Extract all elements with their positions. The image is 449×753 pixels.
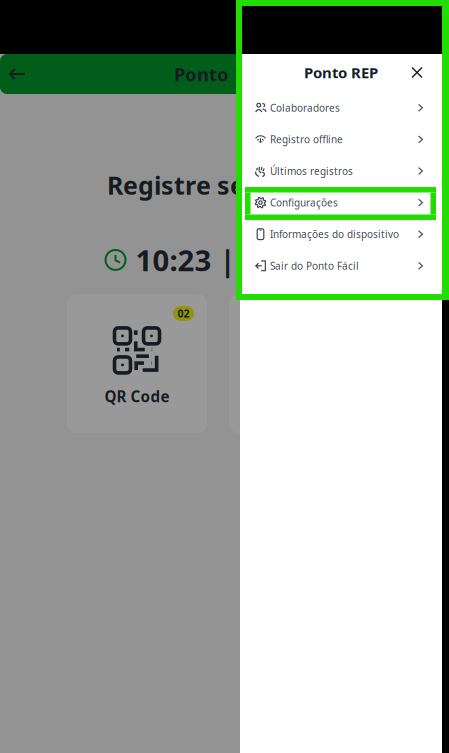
staticText: 02 <box>177 306 189 321</box>
staticText: Configurações <box>270 196 338 209</box>
button[interactable]: Informações do dispositivo <box>240 218 442 250</box>
button[interactable]: Fechar menu <box>404 59 430 85</box>
staticText: Registro offline <box>270 133 343 146</box>
button[interactable]: Registro offline <box>240 124 442 155</box>
staticText: Ponto Fácil <box>174 61 275 87</box>
staticText: Informações do dispositivo <box>270 227 399 241</box>
staticText: QR Code <box>104 386 169 407</box>
button[interactable]: QR Code <box>67 294 207 433</box>
button[interactable]: Colaboradores <box>240 92 442 124</box>
staticText: Sair do Ponto Fácil <box>270 259 359 273</box>
button[interactable]: Selfie <box>229 294 369 433</box>
staticText: 10:23 | 25 Nov <box>135 240 344 280</box>
button[interactable]: Voltar <box>2 59 32 89</box>
staticText: Ponto REP <box>304 62 378 83</box>
button[interactable]: Sair do Ponto Fácil <box>240 250 442 282</box>
staticText: Registre seu ponto <box>107 168 342 202</box>
button[interactable]: Últimos registros <box>240 155 442 187</box>
staticText: Últimos registros <box>270 164 353 178</box>
staticText: Colaboradores <box>270 101 340 115</box>
button[interactable]: Configurações <box>240 187 442 218</box>
